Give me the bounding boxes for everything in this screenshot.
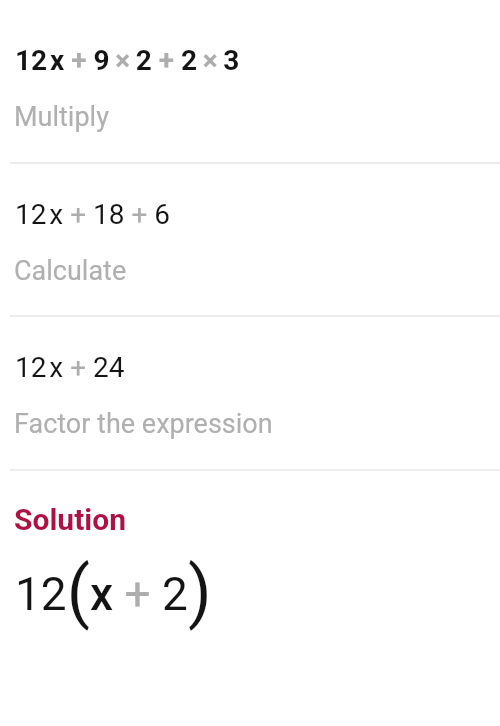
staticText: Multiply xyxy=(14,101,109,133)
staticText: 12 x + 24 xyxy=(15,351,125,384)
button[interactable] xyxy=(0,317,500,470)
staticText: Calculate xyxy=(14,255,127,287)
button[interactable] xyxy=(0,164,500,316)
staticText: Factor the expression xyxy=(14,408,273,440)
staticText: 12(x + 2) xyxy=(15,552,212,632)
button[interactable] xyxy=(0,30,500,163)
staticText: 12 x + 18 + 6 xyxy=(15,198,170,231)
staticText: 12 x + 9 × 2 + 2 × 3 xyxy=(15,44,240,77)
staticText: Solution xyxy=(14,502,126,537)
